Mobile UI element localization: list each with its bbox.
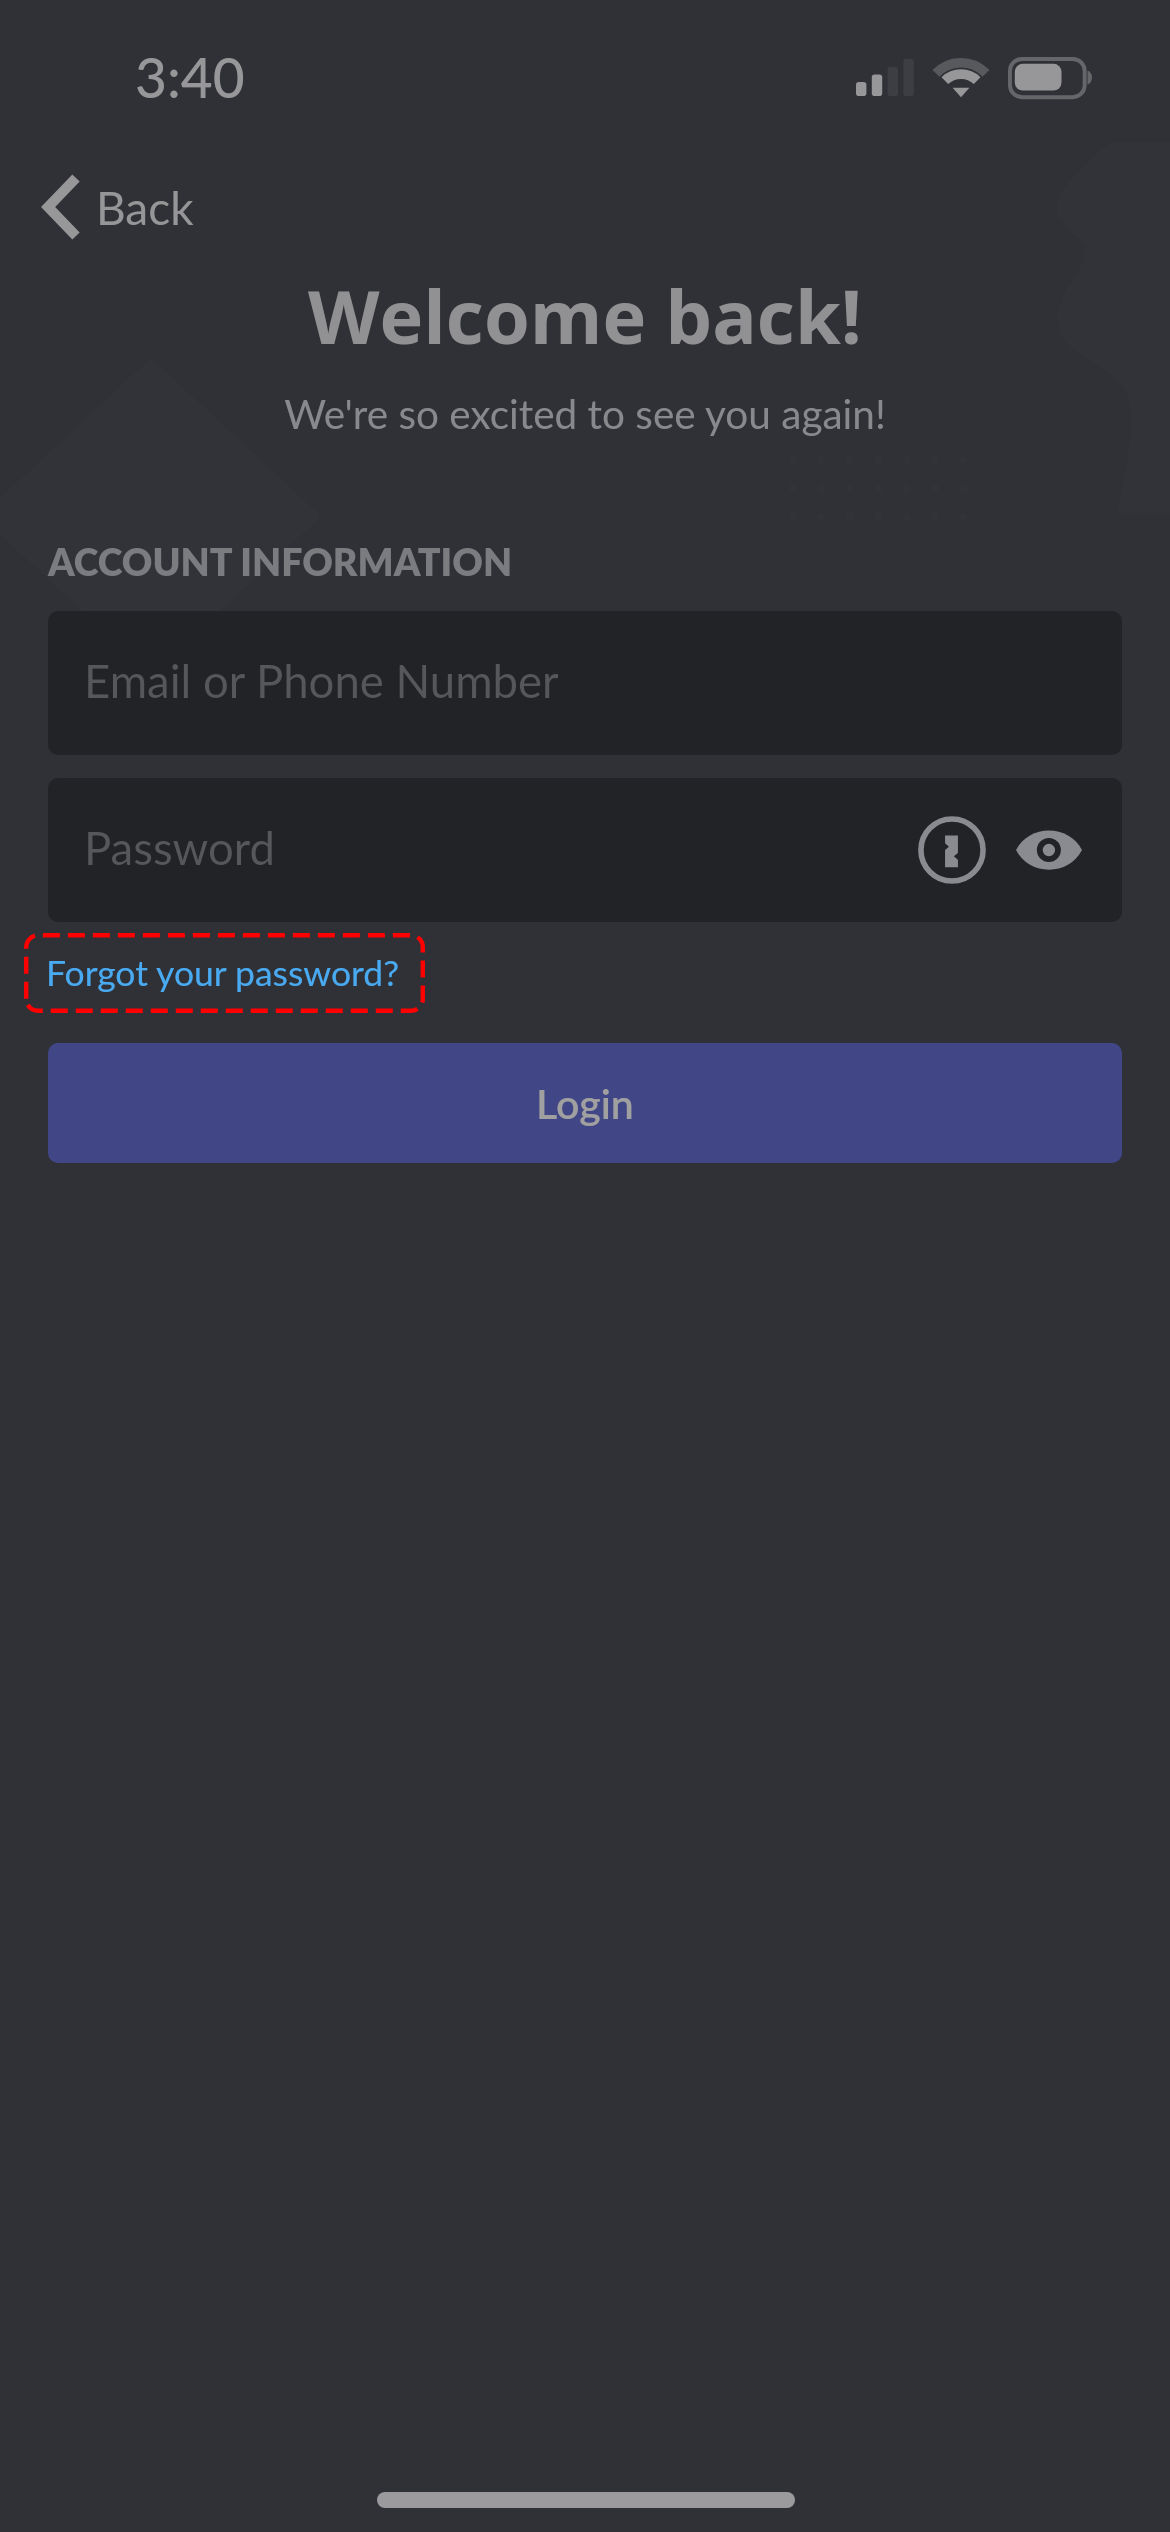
button[interactable]: Password manager (911, 809, 993, 891)
button[interactable]: Email or Phone Number (48, 611, 1122, 755)
staticText: Forgot your password? (46, 951, 400, 994)
button[interactable]: Login (48, 1043, 1122, 1163)
button[interactable]: Show password (1008, 809, 1090, 891)
staticText: ACCOUNT INFORMATION (48, 539, 513, 584)
staticText: We're so excited to see you again! (0, 389, 1170, 438)
staticText: Password (84, 820, 275, 875)
staticText: Email or Phone Number (84, 653, 559, 708)
staticText: Login (536, 1079, 634, 1128)
staticText: Welcome back! (0, 265, 1170, 366)
button[interactable]: Forgot your password? (24, 933, 425, 1013)
button[interactable]: Password (48, 778, 1122, 922)
button[interactable]: Back (20, 162, 194, 252)
staticText: 3:40 (135, 44, 245, 110)
staticText: Back (96, 180, 194, 235)
